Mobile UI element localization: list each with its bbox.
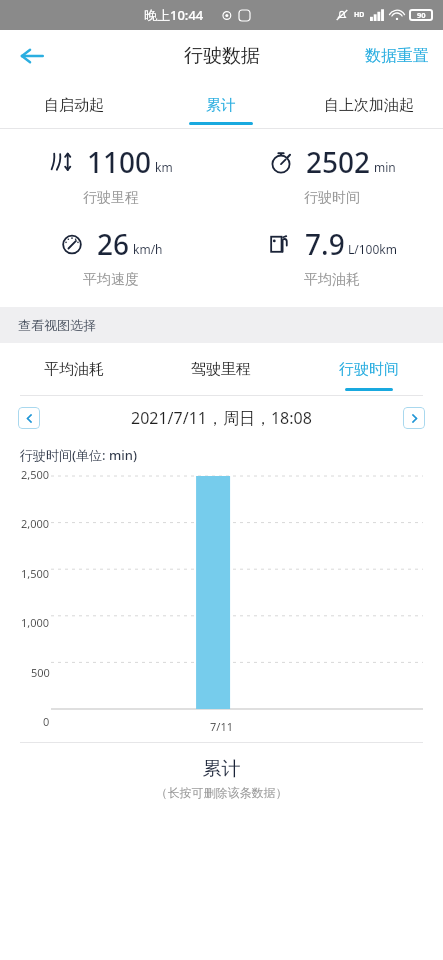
staticText: 自上次加油起 — [324, 96, 414, 115]
staticText: 1,000 — [21, 615, 50, 630]
staticText: 500 — [31, 665, 50, 680]
staticText: 行驶数据 — [184, 44, 260, 68]
staticText: 晚上10:44 — [144, 6, 204, 24]
staticText: 26 — [97, 225, 130, 263]
button[interactable]: 驾驶里程 — [147, 343, 295, 395]
button[interactable]: 数据重置 — [361, 38, 433, 74]
staticText: 7.9 — [305, 225, 345, 263]
staticText: min — [374, 159, 396, 175]
staticText: 平均油耗 — [44, 360, 104, 379]
staticText: 平均油耗 — [304, 271, 360, 289]
staticText: L/100km — [348, 241, 397, 257]
staticText: 行驶时间(单位: min) — [20, 446, 138, 464]
button[interactable]: 行驶时间 — [295, 343, 443, 395]
staticText: km — [155, 159, 173, 175]
staticText: 2,000 — [21, 516, 50, 531]
staticText: 数据重置 — [365, 46, 429, 66]
button[interactable]: 自上次加油起 — [295, 82, 443, 128]
staticText: 2021/7/11，周日，18:08 — [131, 407, 312, 429]
staticText: 查看视图选择 — [18, 317, 96, 333]
staticText: 行驶里程 — [83, 189, 139, 207]
staticText: 行驶时间 — [304, 189, 360, 207]
button[interactable]: Previous — [18, 407, 40, 429]
staticText: （长按可删除该条数据） — [0, 785, 443, 800]
staticText: 累计 — [206, 96, 236, 115]
staticText: HD — [354, 10, 365, 20]
button[interactable]: 自启动起 — [0, 82, 147, 128]
staticText: 0 — [43, 714, 50, 729]
staticText: 1,500 — [21, 566, 50, 581]
staticText: 自启动起 — [44, 96, 104, 115]
staticText: km/h — [133, 241, 163, 257]
button[interactable]: 累计 — [147, 82, 295, 128]
staticText: 累计 — [0, 757, 443, 781]
button[interactable]: Next — [403, 407, 425, 429]
staticText: 平均速度 — [83, 271, 139, 289]
staticText: 90 — [417, 10, 426, 20]
staticText: 2502 — [306, 143, 371, 181]
button[interactable]: 平均油耗 — [0, 343, 147, 395]
staticText: 1100 — [87, 143, 152, 181]
staticText: 2,500 — [21, 467, 50, 482]
button[interactable]: Back — [12, 36, 52, 76]
staticText: 行驶时间 — [339, 360, 399, 379]
staticText: 驾驶里程 — [191, 360, 251, 379]
staticText: 7/11 — [210, 719, 233, 734]
